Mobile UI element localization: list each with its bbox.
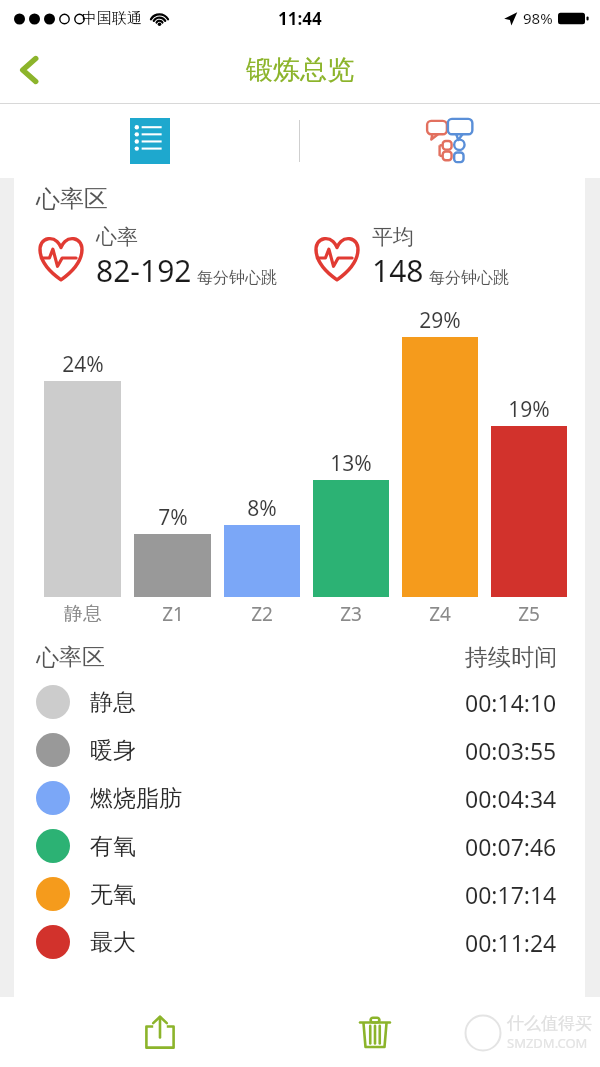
- staticText: 82-192: [96, 250, 192, 291]
- staticText: 最大: [90, 928, 136, 957]
- staticText: 心率区: [36, 184, 108, 214]
- staticText: SMZDM.COM: [507, 1034, 588, 1052]
- staticText: 24%: [62, 350, 104, 379]
- staticText: Z5: [518, 601, 540, 627]
- button[interactable]: 燃烧脂肪: [14, 774, 585, 822]
- staticText: 每分钟心跳: [197, 268, 277, 288]
- staticText: 00:03:55: [465, 735, 557, 766]
- staticText: 平均: [372, 224, 414, 250]
- staticText: 00:04:34: [465, 783, 557, 814]
- staticText: 静息: [90, 688, 136, 717]
- staticText: 00:07:46: [465, 831, 557, 862]
- staticText: Z1: [162, 601, 184, 627]
- staticText: 00:17:14: [465, 879, 557, 910]
- button[interactable]: 最大: [14, 918, 585, 966]
- button[interactable]: Share chat: [300, 104, 600, 178]
- staticText: 中国联通: [82, 9, 142, 28]
- staticText: 13%: [330, 449, 372, 478]
- staticText: 29%: [419, 306, 461, 335]
- button[interactable]: 有氧: [14, 822, 585, 870]
- button[interactable]: 无氧: [14, 870, 585, 918]
- button[interactable]: 暖身: [14, 726, 585, 774]
- staticText: 148: [372, 250, 424, 291]
- button[interactable]: 静息: [14, 678, 585, 726]
- staticText: 7%: [158, 503, 188, 532]
- button[interactable]: Back: [4, 44, 56, 96]
- staticText: Z4: [429, 601, 451, 627]
- button[interactable]: Summary list: [0, 104, 299, 178]
- staticText: 每分钟心跳: [429, 268, 509, 288]
- staticText: 00:14:10: [465, 687, 557, 718]
- staticText: 11:44: [278, 7, 322, 30]
- staticText: 有氧: [90, 832, 136, 861]
- staticText: 19%: [508, 395, 550, 424]
- staticText: 心率: [96, 224, 138, 250]
- staticText: 持续时间: [465, 643, 557, 672]
- button[interactable]: Share: [130, 1002, 190, 1062]
- staticText: 心率区: [36, 643, 105, 672]
- staticText: 静息: [64, 602, 102, 626]
- staticText: Z3: [340, 601, 362, 627]
- staticText: 什么值得买: [507, 1013, 592, 1034]
- staticText: 00:11:24: [465, 927, 557, 958]
- staticText: 锻炼总览: [246, 53, 354, 87]
- staticText: 暖身: [90, 736, 136, 765]
- staticText: 无氧: [90, 880, 136, 909]
- staticText: 8%: [247, 494, 277, 523]
- button[interactable]: Delete: [345, 1002, 405, 1062]
- staticText: 燃烧脂肪: [90, 784, 182, 813]
- staticText: Z2: [251, 601, 273, 627]
- staticText: 98%: [523, 8, 553, 28]
